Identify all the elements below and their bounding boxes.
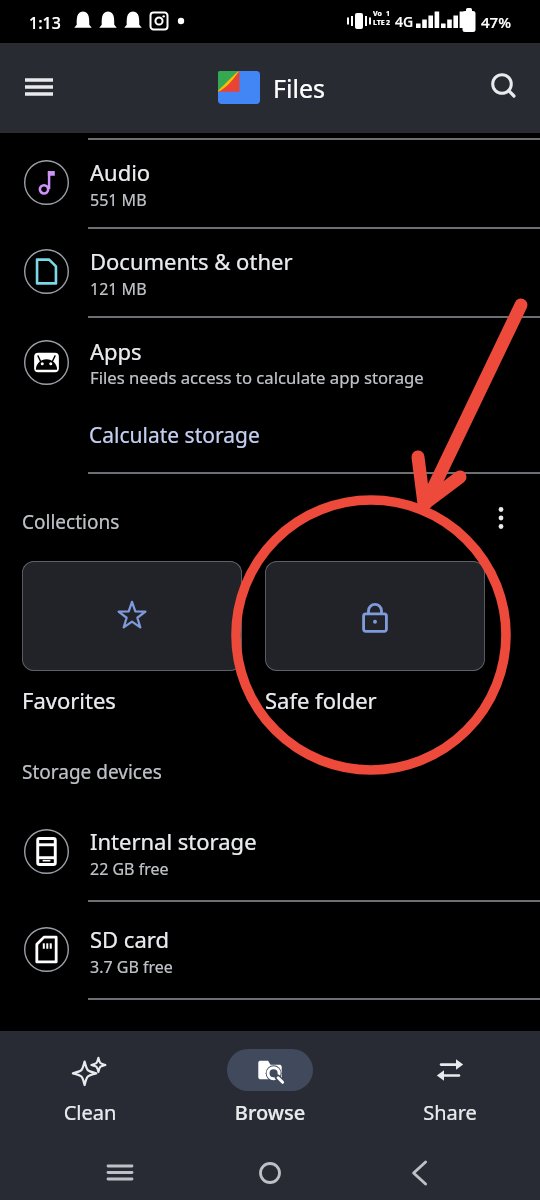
staticText: 4G	[395, 12, 414, 31]
staticText: Vo LTE	[373, 9, 385, 27]
button[interactable]: Share	[360, 1040, 540, 1130]
staticText: Storage devices	[22, 759, 162, 785]
staticText: 3.7 GB free	[90, 956, 173, 978]
staticText: 121 MB	[90, 278, 147, 300]
button[interactable]: Internal storage	[0, 802, 540, 900]
staticText: Browse	[180, 1099, 360, 1126]
staticText: Favorites	[22, 685, 116, 715]
staticText: Files	[273, 71, 325, 105]
staticText: 1:13	[29, 12, 61, 34]
button[interactable]: Browse	[180, 1040, 360, 1130]
staticText: Calculate storage	[89, 421, 260, 450]
button[interactable]: SD card	[0, 900, 540, 998]
button[interactable]	[265, 561, 485, 671]
staticText: Files needs access to calculate app stor…	[90, 366, 424, 389]
button[interactable]: Recent apps	[90, 1145, 150, 1200]
button[interactable]: Clean	[0, 1040, 180, 1130]
staticText: Documents & other	[90, 246, 293, 276]
staticText: Safe folder	[265, 685, 377, 715]
button[interactable]: Search	[476, 58, 532, 114]
staticText: 22 GB free	[90, 858, 169, 880]
staticText: 1 2	[386, 9, 391, 27]
staticText: Collections	[22, 509, 120, 535]
staticText: Clean	[0, 1099, 180, 1126]
staticText: 551 MB	[90, 189, 147, 211]
staticText: Apps	[90, 336, 142, 366]
staticText: Share	[360, 1099, 540, 1126]
staticText: 47%	[481, 12, 511, 32]
staticText: SD card	[90, 924, 169, 954]
button[interactable]: Audio	[0, 138, 540, 227]
button[interactable]: Open navigation menu	[11, 60, 67, 116]
staticText: Audio	[90, 157, 151, 187]
button[interactable]: Calculate storage	[87, 418, 262, 453]
staticText: Internal storage	[90, 826, 257, 856]
button[interactable]: Documents & other	[0, 227, 540, 316]
button[interactable]: Apps	[0, 316, 540, 394]
button[interactable]: Home	[240, 1145, 300, 1200]
button[interactable]	[22, 561, 242, 671]
button[interactable]: More options	[483, 500, 519, 536]
button[interactable]: Back	[390, 1145, 450, 1200]
